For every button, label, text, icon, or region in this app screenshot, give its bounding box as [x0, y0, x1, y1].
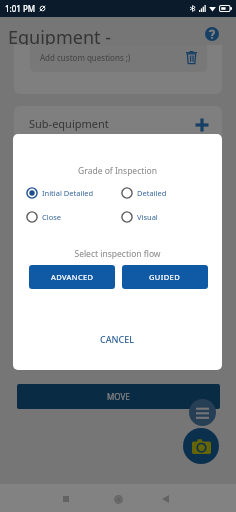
staticText: ADVANCED: [51, 272, 94, 282]
button[interactable]: Back: [152, 486, 178, 512]
button[interactable]: Menu: [189, 399, 216, 426]
staticText: CANCEL: [100, 333, 135, 345]
staticText: Add custom questions ;): [40, 52, 131, 63]
button[interactable]: Camera: [183, 428, 219, 464]
button[interactable]: Close: [26, 207, 121, 227]
staticText: Grade of Inspection: [13, 165, 222, 177]
staticText: Sub-equipment: [29, 116, 109, 131]
staticText: Close: [42, 212, 62, 222]
staticText: 1:01 PM: [5, 3, 36, 14]
staticText: MOVE: [107, 391, 130, 402]
staticText: Detailed: [137, 188, 167, 198]
button[interactable]: GUIDED: [122, 265, 208, 289]
staticText: GUIDED: [149, 272, 181, 282]
button[interactable]: ADVANCED: [29, 265, 115, 289]
button[interactable]: Detailed: [121, 183, 209, 203]
button[interactable]: MOVE: [17, 384, 220, 409]
button[interactable]: Help: [205, 27, 219, 41]
staticText: Equipment -: [8, 25, 111, 50]
button[interactable]: Visual: [121, 207, 209, 227]
button[interactable]: Recents: [53, 486, 79, 512]
button[interactable]: Initial Detailed: [26, 183, 121, 203]
button[interactable]: CANCEL: [90, 329, 145, 349]
button[interactable]: Delete: [182, 48, 200, 66]
button[interactable]: Add sub-equipment: [193, 116, 211, 134]
staticText: Select inspection flow: [13, 248, 222, 260]
staticText: Initial Detailed: [42, 188, 94, 198]
staticText: Visual: [137, 212, 158, 222]
button[interactable]: Home: [105, 486, 131, 512]
